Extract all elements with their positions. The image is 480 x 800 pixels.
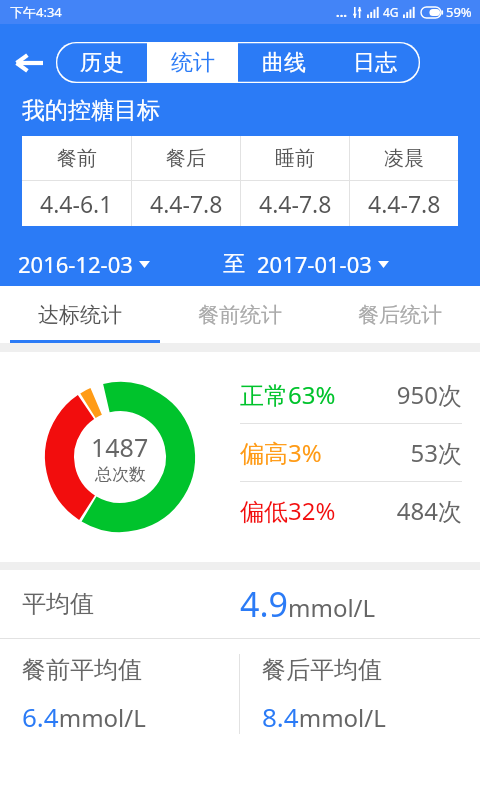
staticText: 4.4-6.1: [40, 188, 113, 219]
staticText: 总次数: [95, 464, 146, 485]
staticText: 1487: [91, 430, 149, 464]
staticText: 餐后统计: [358, 302, 442, 328]
staticText: 4.4-7.8: [368, 188, 441, 219]
staticText: 餐后: [166, 146, 206, 171]
staticText: 历史: [80, 49, 124, 77]
staticText: 偏高3%: [240, 436, 410, 469]
button[interactable]: 2016-12-03: [18, 249, 223, 279]
button[interactable]: Back: [0, 42, 56, 83]
staticText: 4G: [383, 4, 399, 20]
staticText: 餐前平均值: [22, 655, 142, 685]
staticText: 950次: [396, 378, 462, 411]
staticText: 曲线: [262, 49, 306, 77]
button[interactable]: 曲线: [238, 42, 329, 83]
button[interactable]: 餐后统计: [320, 286, 480, 343]
button[interactable]: 平均值: [22, 570, 458, 638]
staticText: 4.4-7.8: [150, 188, 223, 219]
staticText: 睡前: [275, 146, 315, 171]
staticText: 凌晨: [384, 146, 424, 171]
staticText: 59%: [446, 3, 472, 21]
staticText: 2016-12-03: [18, 249, 133, 279]
staticText: 8.4mmol/L: [262, 699, 386, 734]
staticText: 达标统计: [38, 302, 122, 328]
staticText: 下午4:34: [10, 3, 62, 21]
staticText: 正常63%: [240, 378, 396, 411]
staticText: 至: [223, 250, 245, 278]
button[interactable]: 达标统计: [0, 286, 160, 343]
staticText: 我的控糖目标: [22, 96, 160, 125]
staticText: 484次: [396, 494, 462, 527]
staticText: 平均值: [22, 589, 240, 619]
staticText: 餐后平均值: [262, 655, 382, 685]
button[interactable]: 历史: [56, 42, 147, 83]
staticText: 餐前: [57, 146, 97, 171]
button[interactable]: 餐前平均值: [0, 639, 239, 749]
button[interactable]: 日志: [329, 42, 420, 83]
staticText: 日志: [353, 49, 397, 77]
staticText: 4.9mmol/L: [240, 581, 458, 627]
staticText: 53次: [410, 436, 462, 469]
staticText: 偏低32%: [240, 494, 396, 527]
staticText: 餐前统计: [198, 302, 282, 328]
staticText: 统计: [171, 49, 215, 77]
staticText: 6.4mmol/L: [22, 699, 146, 734]
button[interactable]: 2017-01-03: [257, 249, 462, 279]
button[interactable]: 餐后平均值: [240, 639, 480, 749]
button[interactable]: 统计: [147, 42, 238, 83]
staticText: ...: [336, 3, 347, 21]
button[interactable]: 餐前统计: [160, 286, 320, 343]
staticText: 4.4-7.8: [259, 188, 332, 219]
staticText: 2017-01-03: [257, 249, 372, 279]
